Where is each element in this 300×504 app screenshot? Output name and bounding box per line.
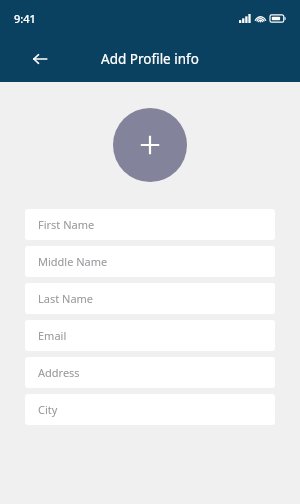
- staticText: Add Profile info: [101, 50, 199, 68]
- button[interactable]: Email: [25, 320, 275, 351]
- button[interactable]: First Name: [25, 209, 275, 240]
- staticText: Address: [38, 365, 80, 380]
- button[interactable]: City: [25, 394, 275, 425]
- staticText: First Name: [38, 217, 95, 232]
- button[interactable]: Back: [22, 41, 58, 77]
- button[interactable]: Last Name: [25, 283, 275, 314]
- button[interactable]: Add profile photo: [113, 108, 187, 182]
- button[interactable]: Middle Name: [25, 246, 275, 277]
- staticText: Middle Name: [38, 254, 108, 269]
- button[interactable]: Address: [25, 357, 275, 388]
- staticText: City: [38, 402, 58, 417]
- staticText: Email: [38, 328, 67, 343]
- staticText: 9:41: [14, 11, 36, 26]
- staticText: Last Name: [38, 291, 94, 306]
